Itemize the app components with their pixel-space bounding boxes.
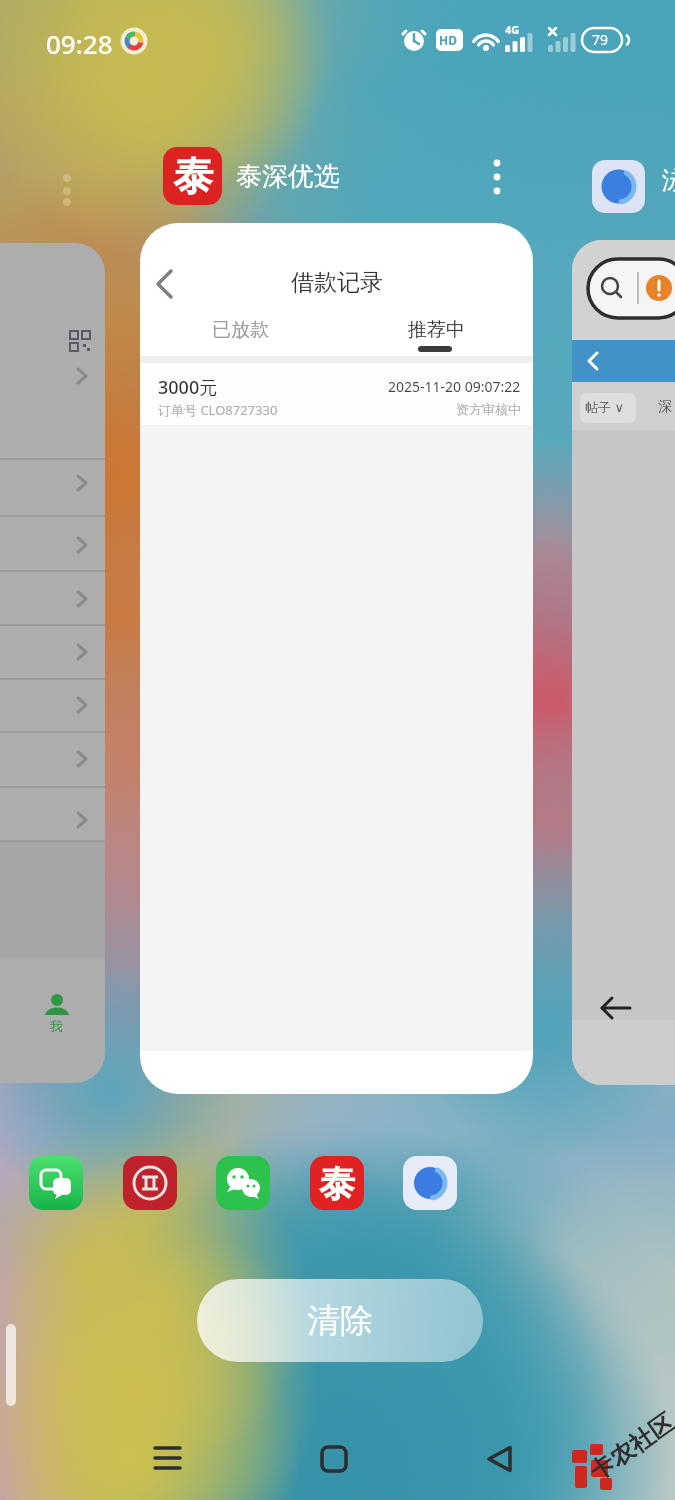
staticText: HD (439, 32, 457, 48)
button[interactable] (312, 1438, 358, 1478)
button[interactable] (123, 1156, 177, 1210)
staticText: 3000元 (158, 375, 218, 400)
button[interactable] (592, 160, 645, 213)
staticText: 借款记录 (291, 268, 383, 297)
button[interactable]: 我 (0, 243, 105, 1083)
button[interactable]: 泰 (310, 1156, 364, 1210)
staticText: 深 (658, 398, 672, 416)
button[interactable]: 借款记录 (140, 223, 533, 1094)
staticText: 卡农社区 (584, 1407, 675, 1487)
button[interactable] (403, 1156, 457, 1210)
button[interactable]: 帖子 ∨ (572, 240, 675, 1085)
button[interactable] (29, 1156, 83, 1210)
button[interactable] (145, 1438, 191, 1478)
staticText: 泰 (319, 1161, 355, 1206)
staticText: 清除 (307, 1300, 373, 1342)
staticText: 2025-11-20 09:07:22 (388, 377, 521, 396)
button[interactable] (216, 1156, 270, 1210)
staticText: 帖子 ∨ (585, 398, 624, 416)
button[interactable]: 3000元 (140, 363, 533, 425)
staticText: 订单号 CLO8727330 (158, 401, 278, 419)
staticText: 09:28 (46, 26, 113, 61)
staticText: 泰深优选 (236, 160, 340, 193)
staticText: 已放款 (212, 318, 269, 342)
staticText: 资方审核中 (456, 401, 521, 417)
staticText: 4G (505, 22, 520, 37)
button[interactable]: 已放款 (200, 315, 280, 345)
staticText: 79 (592, 30, 609, 49)
staticText: 推荐中 (408, 318, 465, 342)
staticText: 泰 (173, 151, 213, 201)
staticText: 我 (50, 1018, 63, 1034)
button[interactable]: 泰 (163, 147, 222, 205)
button[interactable]: 推荐中 (396, 315, 476, 345)
staticText: 泳 (662, 165, 675, 196)
button[interactable]: 清除 (197, 1279, 483, 1362)
button[interactable] (479, 1438, 525, 1478)
